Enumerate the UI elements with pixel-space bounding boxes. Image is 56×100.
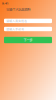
- staticText: 请输入真实姓名: [6, 19, 27, 23]
- button[interactable]: 下一步: [4, 37, 52, 43]
- staticText: 下一步: [23, 38, 32, 42]
- staticText: 完善个人信息资料: [6, 7, 30, 12]
- staticText: 9:41: [2, 2, 8, 5]
- button[interactable]: 请输入真实姓名: [4, 19, 52, 23]
- button[interactable]: 请输入手机号: [4, 27, 52, 31]
- staticText: 请输入手机号: [6, 27, 24, 31]
